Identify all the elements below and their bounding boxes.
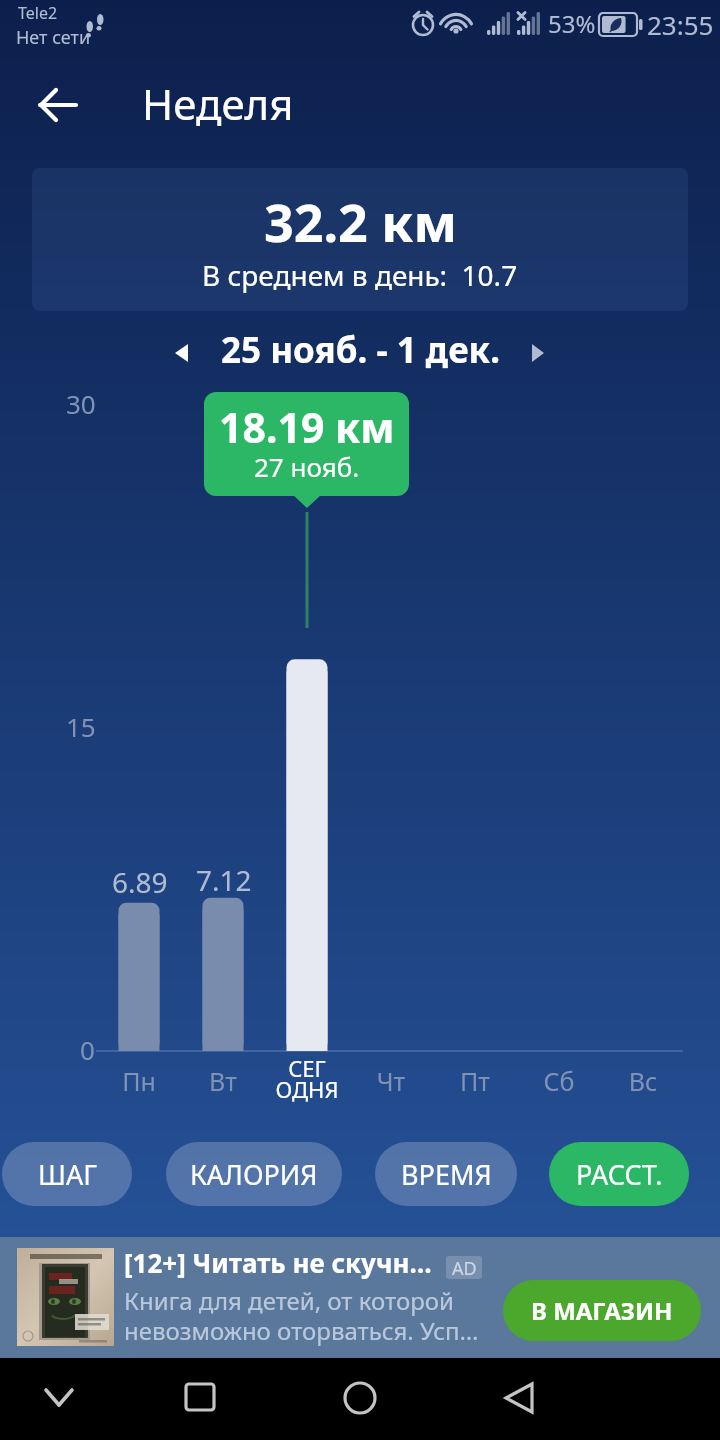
staticText: СЕГ ОДНЯ [265, 1053, 349, 1105]
button[interactable]: 18.19 км [204, 392, 409, 496]
button[interactable]: ШАГ [2, 1142, 132, 1206]
staticText: [12+] Читать не скучн… [124, 1245, 432, 1280]
button[interactable]: [12+] Читать не скучн… [0, 1237, 720, 1358]
staticText: Пт [433, 1064, 517, 1098]
staticText: Вс [601, 1064, 685, 1098]
staticText: В среднем в день: 10.7 [202, 256, 518, 294]
staticText: Сб [517, 1064, 601, 1098]
button[interactable]: РАССТ. [549, 1142, 689, 1206]
staticText: 15 [66, 709, 96, 744]
staticText: Нет сети [16, 25, 91, 50]
staticText: В МАГАЗИН [531, 1294, 673, 1327]
button[interactable]: Скрыть клавиатуру [28, 1367, 90, 1429]
staticText: КАЛОРИЯ [190, 1156, 318, 1193]
button[interactable]: Главный экран [329, 1367, 391, 1429]
button[interactable]: 32.2 км [32, 168, 688, 311]
staticText: Неделя [142, 75, 294, 132]
button[interactable]: В МАГАЗИН [503, 1280, 701, 1341]
staticText: 7.12 [196, 861, 252, 899]
button[interactable]: Обзор [169, 1367, 231, 1429]
staticText: ШАГ [38, 1156, 97, 1193]
button[interactable]: КАЛОРИЯ [166, 1142, 342, 1206]
staticText: РАССТ. [576, 1156, 663, 1193]
button[interactable]: Предыдущая неделя [161, 336, 197, 370]
button[interactable]: ВРЕМЯ [375, 1142, 517, 1206]
staticText: 30 [66, 386, 96, 421]
staticText: ВРЕМЯ [401, 1156, 492, 1193]
staticText: Вт [181, 1064, 265, 1098]
staticText: 32.2 км [264, 186, 457, 257]
staticText: Книга для детей, от которой невозможно о… [124, 1284, 479, 1347]
staticText: Пн [97, 1064, 181, 1098]
staticText: 23:55 [647, 7, 714, 42]
staticText: Tele2 [18, 2, 58, 24]
staticText: Чт [349, 1064, 433, 1098]
button[interactable]: Назад [30, 79, 82, 131]
staticText: 27 нояб. [254, 449, 360, 484]
button[interactable]: Следующая неделя [518, 336, 554, 370]
button[interactable]: Назад [487, 1367, 549, 1429]
staticText: 6.89 [112, 863, 168, 901]
staticText: 18.19 км [219, 399, 395, 455]
staticText: AD [452, 1256, 477, 1279]
staticText: 0 [80, 1032, 95, 1067]
staticText: 25 нояб. - 1 дек. [221, 326, 500, 374]
staticText: 53% [548, 7, 596, 40]
